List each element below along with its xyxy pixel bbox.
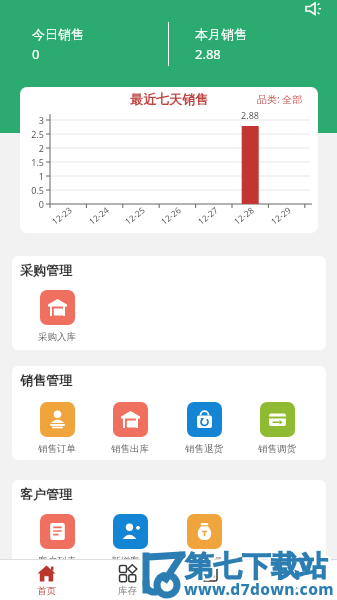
button[interactable]: 销售调货 [246,402,308,455]
button[interactable]: 销售出库 [99,402,161,455]
staticText: 库存 [118,585,137,597]
button[interactable] [305,2,323,16]
staticText: www.d7down.com [182,578,333,599]
button[interactable]: 销售订单 [26,402,88,455]
button[interactable]: 采购入库 [26,290,88,343]
staticText: 3 [20,114,44,126]
staticText: 我的 [281,585,300,597]
staticText: 0.5 [20,184,44,196]
staticText: 采购管理 [20,262,72,278]
staticText: 1.5 [20,156,44,168]
staticText: 最近七天销售 [20,91,318,107]
staticText: www.d7down.com [184,578,335,599]
button[interactable]: 收款记录 [173,514,235,567]
button[interactable]: 销售退货 [173,402,235,455]
staticText: 采购入库 [38,331,76,343]
staticText: 2.88 [220,109,280,120]
staticText: www.d7down.com [185,579,336,600]
button[interactable]: 我的 [260,564,320,597]
button[interactable]: 首页 [16,564,76,597]
staticText: 12-28 [224,199,263,233]
staticText: 客户列表 [38,555,76,567]
staticText: 首页 [37,585,56,597]
staticText: 12-29 [261,199,300,233]
staticText: www.d7down.com [186,578,337,599]
staticText: 销售退货 [185,443,223,455]
staticText: 客户管理 [20,486,72,502]
staticText: 报表 [200,585,219,597]
button[interactable]: 报表 [179,564,239,597]
staticText: 0 [32,45,40,63]
staticText: 第七下载站 [185,547,328,583]
staticText: 12-26 [151,199,190,233]
staticText: 今日销售 [32,26,84,42]
staticText: 12-27 [188,199,227,233]
staticText: www.d7down.com [183,577,334,598]
staticText: 第七下载站 [186,548,329,584]
staticText: 12-23 [42,199,81,233]
staticText: 第七下载站 [187,549,330,585]
staticText: 品类: 全部 [257,92,303,106]
button[interactable]: 库存 [97,564,157,597]
button[interactable]: 品类: 全部 [257,92,303,106]
button[interactable]: 新增客户 [99,514,161,567]
staticText: 销售调货 [258,443,296,455]
staticText: www.d7down.com [184,576,335,597]
staticText: 第七下载站 [185,549,328,585]
staticText: 第七下载站 [186,550,329,586]
staticText: 第七下载站 [184,548,327,584]
staticText: www.d7down.com [183,579,334,600]
staticText: 2 [20,142,44,154]
staticText: 0 [20,198,44,210]
staticText: 第七下载站 [184,550,327,586]
staticText: 销售出库 [111,443,149,455]
staticText: 销售订单 [38,443,76,455]
staticText: 销售管理 [20,372,72,388]
staticText: 第七下载站 [185,551,328,587]
staticText: 本月销售 [195,26,247,42]
staticText: www.d7down.com [184,580,335,600]
staticText: 2.5 [20,128,44,140]
staticText: 1 [20,170,44,182]
staticText: 12-24 [79,199,118,233]
staticText: 2.88 [195,45,221,63]
staticText: 第七下载站 [183,549,326,585]
staticText: 新增客户 [111,555,149,567]
staticText: www.d7down.com [185,577,336,598]
button[interactable]: 客户列表 [26,514,88,567]
staticText: 收款记录 [185,555,223,567]
staticText: 12-25 [115,199,154,233]
